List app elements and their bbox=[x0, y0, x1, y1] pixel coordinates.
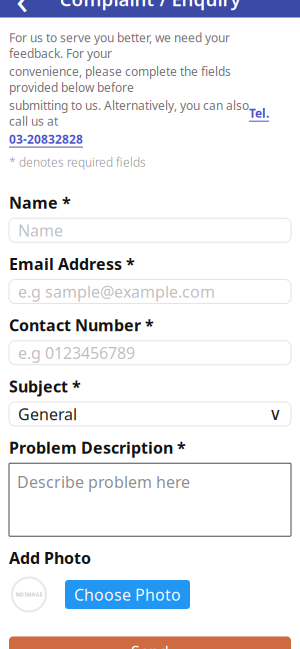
staticText: ‹ bbox=[16, 0, 28, 26]
button[interactable]: Choose Photo bbox=[65, 580, 190, 609]
button[interactable]: Send bbox=[9, 636, 291, 649]
staticText: Name bbox=[18, 220, 63, 241]
staticText: convenience, please complete the fields … bbox=[9, 63, 231, 95]
staticText: e.g 0123456789 bbox=[18, 342, 135, 363]
staticText: ∨ bbox=[269, 404, 282, 424]
staticText: Problem Description * bbox=[9, 437, 186, 458]
staticText: Send bbox=[131, 641, 169, 649]
staticText: General bbox=[18, 403, 77, 425]
staticText: e.g sample@example.com bbox=[18, 281, 215, 302]
staticText: Add Photo bbox=[9, 547, 91, 568]
staticText: 03-20832828 bbox=[9, 131, 83, 147]
staticText: Complaint / Enquiry bbox=[59, 0, 240, 11]
staticText: * denotes required fields bbox=[9, 154, 146, 170]
button[interactable]: Back bbox=[0, 0, 44, 17]
staticText: Subject * bbox=[9, 376, 81, 397]
staticText: submitting to us. Alternatively, you can… bbox=[9, 97, 249, 129]
button[interactable]: 03-20832828 bbox=[9, 131, 83, 147]
staticText: Contact Number * bbox=[9, 314, 154, 336]
button[interactable]: e.g sample@example.com bbox=[9, 279, 291, 303]
button[interactable]: Name bbox=[9, 218, 291, 242]
staticText: For us to serve you better, we need your… bbox=[9, 29, 230, 61]
staticText: Choose Photo bbox=[74, 584, 181, 605]
button[interactable]: General bbox=[9, 402, 291, 426]
button[interactable]: e.g 0123456789 bbox=[9, 341, 291, 365]
staticText: Describe problem here bbox=[17, 471, 190, 492]
button[interactable]: Describe problem here bbox=[9, 463, 291, 536]
staticText: Email Address * bbox=[9, 253, 135, 274]
staticText: Name * bbox=[9, 192, 71, 213]
button[interactable]: Tel. bbox=[249, 105, 269, 121]
staticText: Tel. bbox=[249, 105, 269, 121]
staticText: NO IMAGE bbox=[15, 591, 42, 598]
